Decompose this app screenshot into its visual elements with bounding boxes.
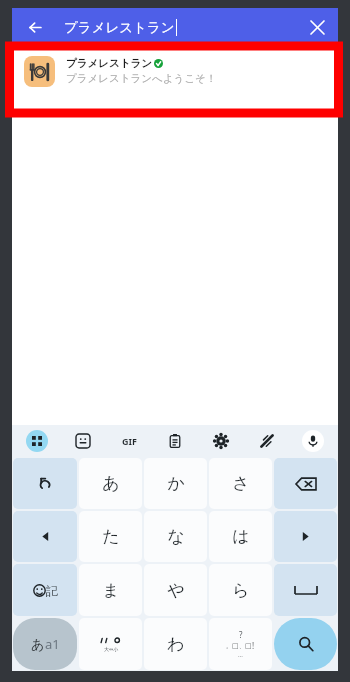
button[interactable]: Sticker xyxy=(60,425,106,457)
staticText: プラメレストラン xyxy=(64,19,175,36)
button[interactable]: Back xyxy=(20,12,50,42)
button[interactable]: あ xyxy=(13,618,77,670)
staticText: 。 xyxy=(226,642,232,650)
staticText: プラメレストラン xyxy=(66,57,152,70)
staticText: な xyxy=(167,526,185,547)
staticText: 記 xyxy=(46,583,58,598)
button[interactable]: は xyxy=(209,511,272,562)
button[interactable]: Clipboard xyxy=(152,425,198,457)
staticText: 、 xyxy=(239,642,245,650)
button[interactable]: Delete xyxy=(274,458,337,509)
button[interactable]: プラメレストラン xyxy=(12,46,338,96)
staticText: 大⇔小 xyxy=(104,646,119,652)
button[interactable]: Search xyxy=(274,618,337,670)
staticText: あ xyxy=(31,636,45,652)
staticText: た xyxy=(102,526,120,547)
button[interactable]: さ xyxy=(209,458,272,509)
button[interactable]: わ xyxy=(144,618,207,670)
staticText: プラメレストランへようこそ！ xyxy=(66,72,217,85)
staticText: GIF xyxy=(122,435,137,447)
staticText: □ xyxy=(232,642,239,650)
staticText: ... xyxy=(238,651,243,659)
staticText: ! xyxy=(252,640,255,651)
staticText: か xyxy=(167,473,185,494)
staticText: a1 xyxy=(45,635,60,653)
button[interactable] xyxy=(13,458,77,509)
button[interactable]: ら xyxy=(209,564,272,616)
staticText: ま xyxy=(102,580,120,601)
button[interactable]: Cursor left xyxy=(13,511,77,562)
staticText: □ xyxy=(245,642,252,650)
button[interactable]: Dakuten xyxy=(79,618,142,670)
button[interactable]: Space xyxy=(274,564,337,616)
button[interactable]: や xyxy=(144,564,207,616)
button[interactable]: Voice xyxy=(290,425,336,457)
staticText: さ xyxy=(232,473,250,494)
button[interactable]: Handwriting xyxy=(244,425,290,457)
button[interactable]: か xyxy=(144,458,207,509)
staticText: ら xyxy=(232,580,250,601)
button[interactable]: Emoji and symbols xyxy=(13,564,77,616)
button[interactable]: な xyxy=(144,511,207,562)
button[interactable]: Punctuation xyxy=(209,618,272,670)
button[interactable]: Cursor right xyxy=(274,511,337,562)
button[interactable]: Settings xyxy=(198,425,244,457)
button[interactable]: Apps xyxy=(14,425,60,457)
staticText: わ xyxy=(167,634,185,655)
staticText: あ xyxy=(102,473,120,494)
staticText: や xyxy=(167,580,185,601)
button[interactable]: あ xyxy=(79,458,142,509)
button[interactable]: Clear xyxy=(302,12,332,42)
button[interactable]: た xyxy=(79,511,142,562)
button[interactable]: ま xyxy=(79,564,142,616)
staticText: は xyxy=(232,526,250,547)
button[interactable]: GIF xyxy=(106,425,152,457)
staticText: ? xyxy=(239,629,243,640)
